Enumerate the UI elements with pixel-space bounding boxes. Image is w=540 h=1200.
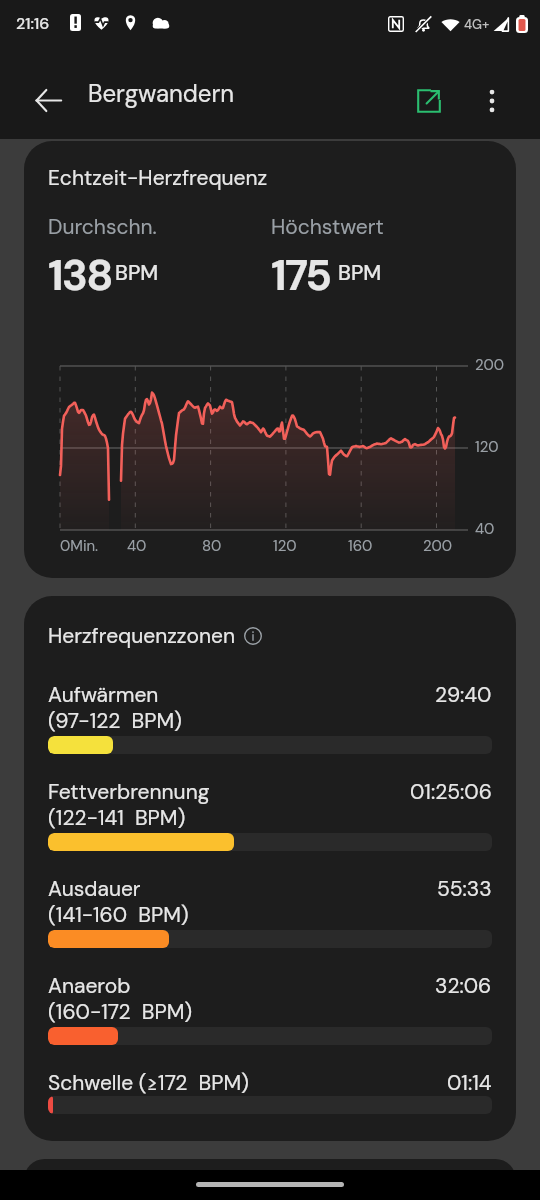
staticText: Echtzeit-Herzfrequenz: [48, 164, 268, 191]
staticText: 21:16: [16, 13, 50, 34]
button[interactable]: Back: [24, 76, 72, 124]
staticText: Aufwärmen: [48, 681, 159, 708]
button[interactable]: Info: [242, 625, 264, 647]
staticText: 200: [423, 536, 453, 556]
staticText: 138: [48, 247, 112, 303]
staticText: 175: [271, 247, 331, 303]
staticText: 120: [475, 437, 499, 457]
staticText: Durchschn.: [48, 213, 157, 240]
staticText: 160: [348, 536, 373, 556]
staticText: (160-172 BPM): [48, 998, 193, 1025]
staticText: 80: [202, 536, 222, 556]
staticText: BPM: [115, 259, 159, 286]
staticText: (97-122 BPM): [48, 707, 182, 734]
button[interactable]: Schwelle (≥172 BPM): [48, 1069, 492, 1114]
button[interactable]: Open in new window: [405, 77, 453, 125]
staticText: 40: [475, 519, 495, 539]
staticText: BPM: [338, 259, 382, 286]
button[interactable]: Fettverbrennung: [48, 778, 492, 851]
staticText: 40: [127, 536, 147, 556]
button[interactable]: Aufwärmen: [48, 681, 492, 754]
staticText: Anaerob: [48, 972, 131, 999]
staticText: 01:25:06: [410, 778, 492, 805]
button[interactable]: [24, 1159, 516, 1200]
staticText: 01:14: [447, 1069, 492, 1096]
staticText: 32:06: [435, 972, 492, 999]
staticText: Herzfrequenzzonen: [48, 622, 235, 649]
staticText: Fettverbrennung: [48, 778, 210, 805]
button[interactable]: Herzfrequenzzonen: [24, 596, 516, 1141]
staticText: Bergwandern: [88, 78, 235, 109]
button[interactable]: Anaerob: [48, 972, 492, 1045]
staticText: 4G+: [464, 16, 490, 33]
staticText: Höchstwert: [271, 213, 384, 240]
staticText: 200: [475, 355, 505, 375]
staticText: 0Min.: [60, 536, 99, 556]
staticText: Schwelle (≥172 BPM): [48, 1069, 249, 1096]
staticText: 120: [273, 536, 297, 556]
staticText: 29:40: [435, 681, 492, 708]
staticText: 55:33: [437, 875, 492, 902]
staticText: Ausdauer: [48, 875, 141, 902]
button[interactable]: More options: [468, 77, 516, 125]
staticText: (122-141 BPM): [48, 804, 186, 831]
button[interactable]: Ausdauer: [48, 875, 492, 948]
staticText: (141-160 BPM): [48, 901, 189, 928]
button[interactable]: Echtzeit-Herzfrequenz: [24, 141, 516, 578]
